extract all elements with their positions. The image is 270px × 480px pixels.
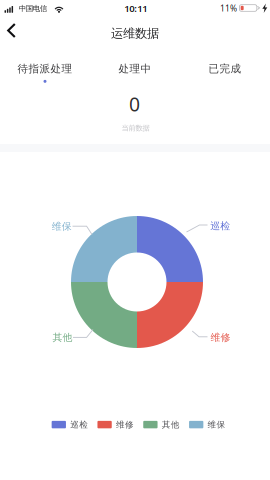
staticText: 处理中 bbox=[118, 62, 151, 75]
staticText: 其他 bbox=[52, 331, 72, 344]
staticText: 维修 bbox=[210, 331, 230, 344]
staticText: 已完成 bbox=[208, 62, 241, 75]
staticText: 维保 bbox=[52, 220, 72, 233]
staticText: 维修 bbox=[116, 419, 134, 430]
staticText: 11% bbox=[220, 2, 237, 14]
button[interactable]: 待指派处理 bbox=[0, 58, 90, 86]
staticText: 10:11 bbox=[124, 2, 147, 15]
staticText: 中国电信 bbox=[19, 4, 47, 13]
staticText: 巡检 bbox=[70, 419, 88, 430]
button[interactable]: Back bbox=[0, 15, 26, 45]
staticText: 巡检 bbox=[210, 220, 230, 232]
button[interactable]: 处理中 bbox=[90, 58, 180, 86]
staticText: 待指派处理 bbox=[17, 62, 72, 75]
staticText: 维保 bbox=[207, 419, 225, 430]
staticText: 其他 bbox=[162, 419, 180, 430]
staticText: 0 bbox=[129, 91, 140, 117]
staticText: 当前数据 bbox=[121, 123, 149, 133]
staticText: 运维数据 bbox=[111, 26, 159, 41]
button[interactable]: 已完成 bbox=[180, 58, 270, 86]
